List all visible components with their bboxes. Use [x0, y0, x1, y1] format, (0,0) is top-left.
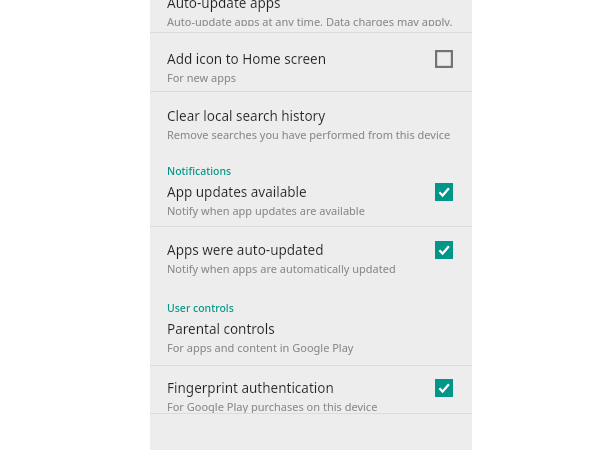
other: App updates available: [435, 183, 453, 201]
staticText: Auto-update apps: [167, 0, 281, 12]
staticText: Parental controls: [167, 320, 275, 338]
staticText: Fingerprint authentication: [167, 379, 334, 397]
staticText: For new apps: [167, 70, 237, 85]
other: Fingerprint authentication: [435, 379, 453, 397]
staticText: User controls: [167, 301, 234, 315]
button[interactable]: App updates available: [150, 183, 472, 226]
button[interactable]: Clear local search history: [150, 92, 472, 146]
button[interactable]: Add icon to Home screen: [150, 33, 472, 91]
other: Apps were auto-updated: [435, 241, 453, 259]
staticText: Remove searches you have performed from …: [167, 127, 451, 142]
staticText: App updates available: [167, 183, 307, 201]
staticText: Clear local search history: [167, 107, 326, 125]
staticText: For Google Play purchases on this device: [167, 399, 378, 413]
button[interactable]: Fingerprint authentication: [150, 366, 472, 413]
staticText: Notify when apps are automatically updat…: [167, 261, 396, 276]
staticText: Apps were auto-updated: [167, 241, 324, 259]
staticText: Add icon to Home screen: [167, 50, 327, 68]
button[interactable]: Auto-update apps: [150, 0, 472, 32]
button[interactable]: Apps were auto-updated: [150, 227, 472, 283]
staticText: Notifications: [167, 164, 232, 178]
staticText: Notify when app updates are available: [167, 203, 365, 218]
other: Add icon to Home screen: [435, 50, 453, 68]
button[interactable]: Parental controls: [150, 320, 472, 365]
staticText: For apps and content in Google Play: [167, 340, 354, 355]
staticText: Auto-update apps at any time. Data charg…: [167, 14, 453, 26]
